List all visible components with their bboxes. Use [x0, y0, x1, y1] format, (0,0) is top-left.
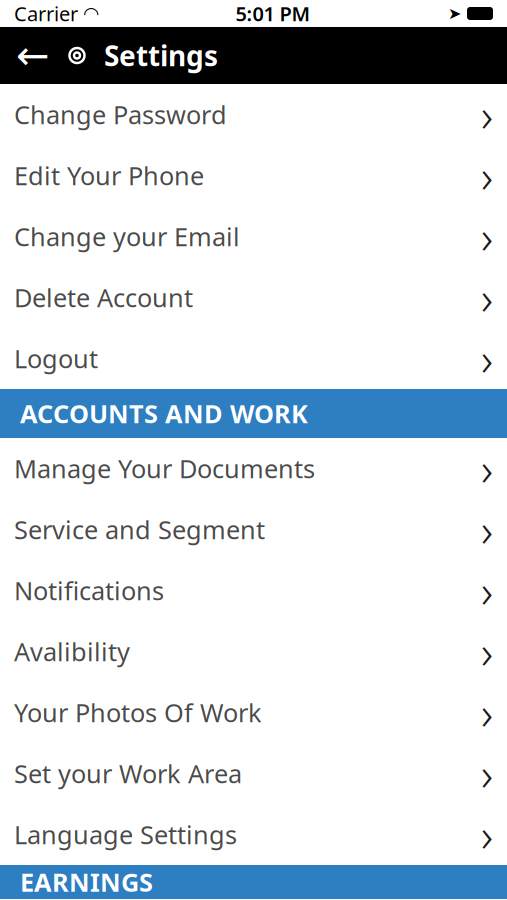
button[interactable]: Logout [0, 328, 507, 389]
staticText: › [481, 206, 493, 267]
staticText: Manage Your Documents [14, 452, 315, 485]
staticText: Change your Email [14, 220, 240, 253]
staticText: › [481, 621, 493, 682]
staticText: Language Settings [14, 818, 237, 851]
button[interactable]: Manage Your Documents [0, 438, 507, 499]
staticText: ACCOUNTS AND WORK [20, 397, 308, 430]
staticText: › [481, 267, 493, 328]
button[interactable]: Change your Email [0, 206, 507, 267]
staticText: Delete Account [14, 281, 193, 314]
staticText: › [481, 499, 493, 560]
staticText: › [481, 438, 493, 499]
button[interactable]: Delete Account [0, 267, 507, 328]
button[interactable]: Service and Segment [0, 499, 507, 560]
staticText: Notifications [14, 574, 164, 607]
staticText: ← [16, 33, 50, 78]
button[interactable]: Your Photos Of Work [0, 682, 507, 743]
button[interactable]: Back [6, 27, 60, 84]
button[interactable]: Set your Work Area [0, 743, 507, 804]
staticText: ➤ [448, 4, 461, 23]
staticText: › [481, 84, 493, 145]
button[interactable]: Change Password [0, 84, 507, 145]
staticText: Logout [14, 342, 98, 375]
button[interactable]: Avalibility [0, 621, 507, 682]
staticText: Settings [104, 37, 218, 74]
staticText: › [481, 560, 493, 621]
staticText: › [481, 743, 493, 804]
staticText: › [481, 804, 493, 865]
staticText: 5:01 PM [235, 0, 310, 27]
staticText: › [481, 328, 493, 389]
staticText: Edit Your Phone [14, 159, 204, 192]
staticText: Change Password [14, 98, 227, 131]
staticText: Avalibility [14, 635, 130, 668]
staticText: › [481, 145, 493, 206]
staticText: Carrier [14, 0, 78, 27]
staticText: Set your Work Area [14, 757, 242, 790]
staticText: Service and Segment [14, 513, 265, 546]
staticText: ◠ [78, 3, 98, 24]
button[interactable]: Edit Your Phone [0, 145, 507, 206]
button[interactable]: Notifications [0, 560, 507, 621]
staticText: Your Photos Of Work [14, 696, 262, 729]
button[interactable]: Language Settings [0, 804, 507, 865]
staticText: EARNINGS [20, 865, 153, 899]
staticText: › [481, 682, 493, 743]
